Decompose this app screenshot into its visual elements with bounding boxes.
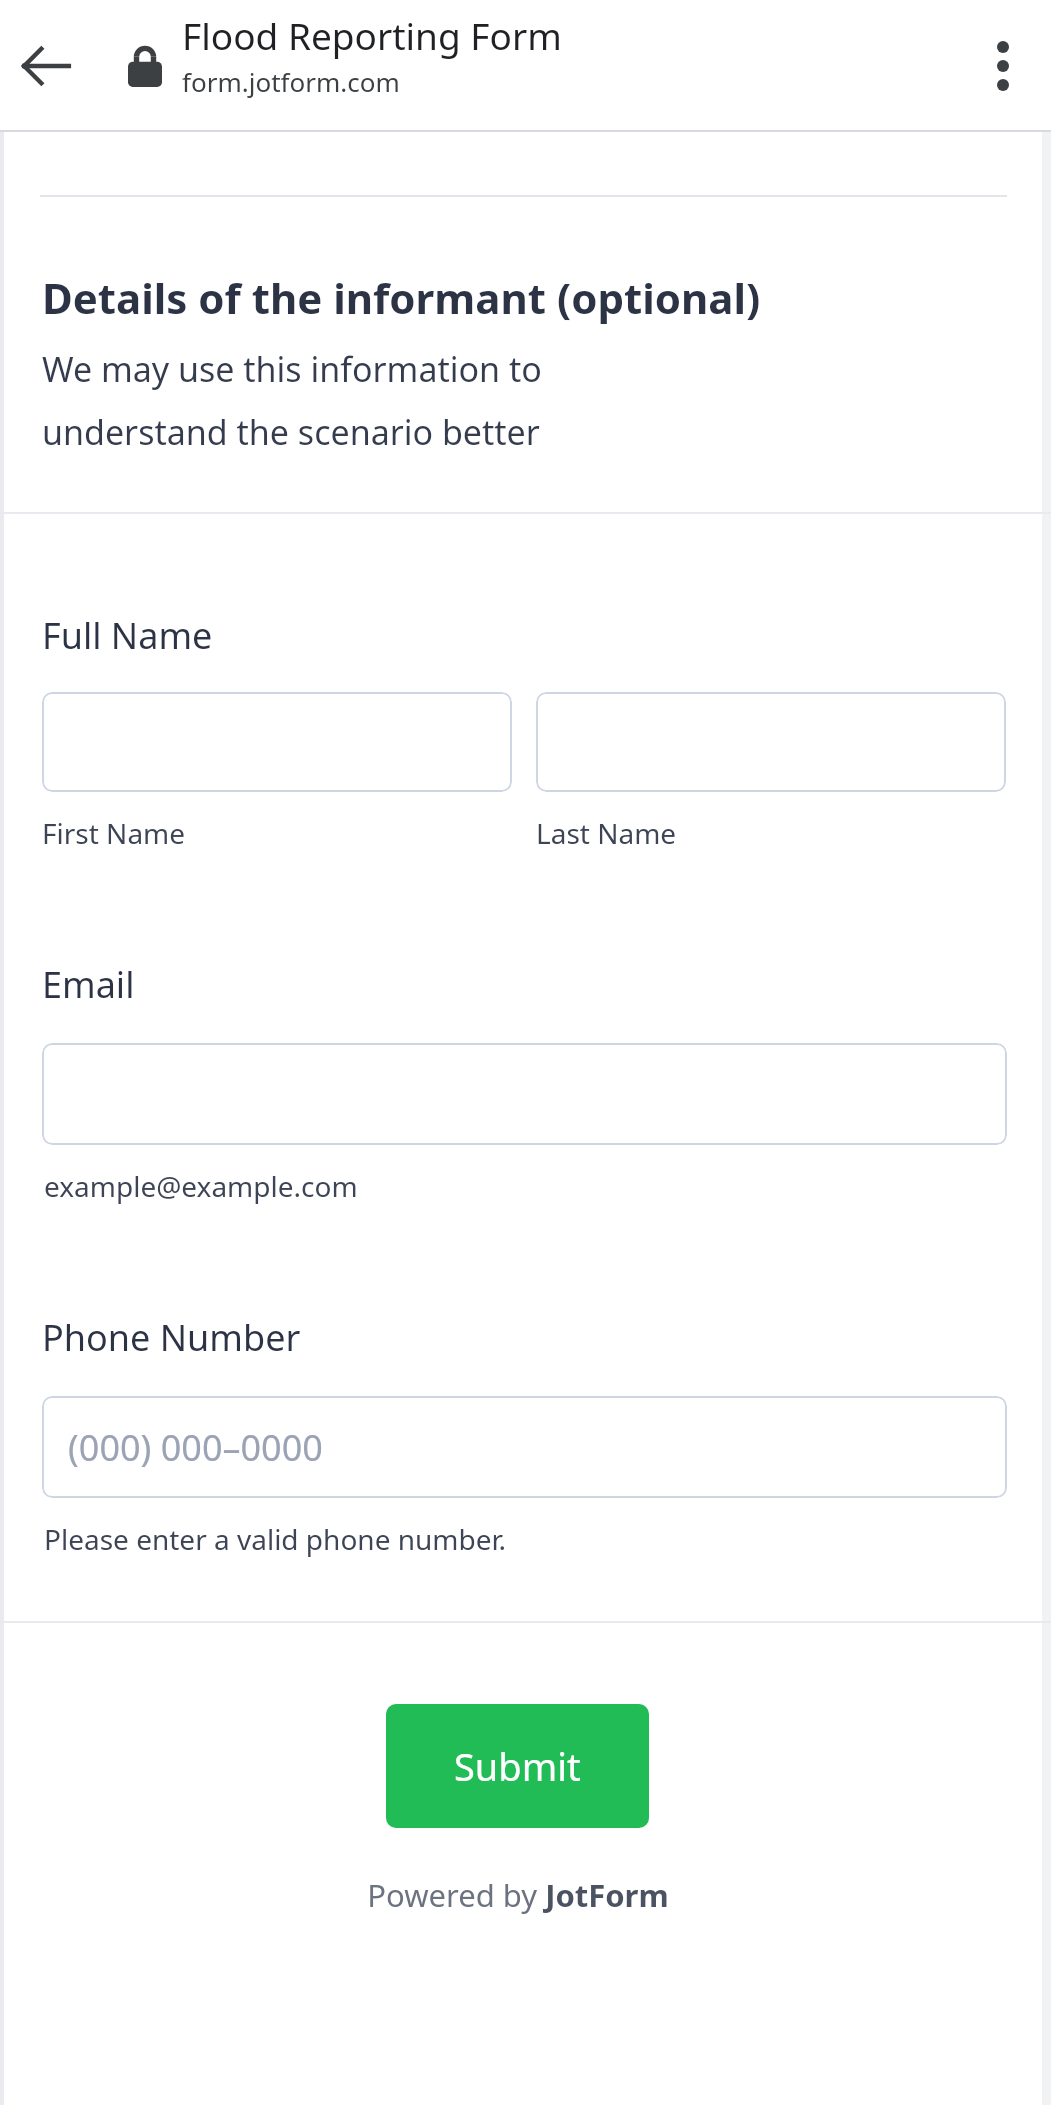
button[interactable]: Submit (386, 1704, 649, 1828)
button[interactable] (536, 692, 1006, 792)
staticText: Last Name (536, 814, 677, 852)
staticText: Powered by JotForm (367, 1874, 669, 1916)
staticText: Phone Number (42, 1313, 301, 1362)
button[interactable]: Back (0, 0, 92, 132)
staticText: Submit (454, 1740, 581, 1792)
button[interactable]: (000) 000–0000 (42, 1396, 1007, 1498)
staticText: Full Name (42, 611, 213, 660)
button[interactable] (42, 692, 512, 792)
button[interactable]: Site information (112, 0, 178, 132)
button[interactable] (42, 1043, 1007, 1145)
button[interactable]: Flood Reporting Form (182, 10, 942, 99)
staticText: form.jotform.com (182, 64, 400, 99)
staticText: example@example.com (44, 1167, 358, 1205)
staticText: Please enter a valid phone number. (44, 1520, 507, 1558)
staticText: First Name (42, 814, 186, 852)
staticText: Email (42, 960, 135, 1009)
staticText: Flood Reporting Form (182, 10, 562, 60)
button[interactable]: More options (955, 0, 1051, 132)
staticText: (000) 000–0000 (68, 1423, 323, 1472)
staticText: Details of the informant (optional) (42, 269, 761, 326)
staticText: We may use this information to understan… (42, 346, 661, 455)
